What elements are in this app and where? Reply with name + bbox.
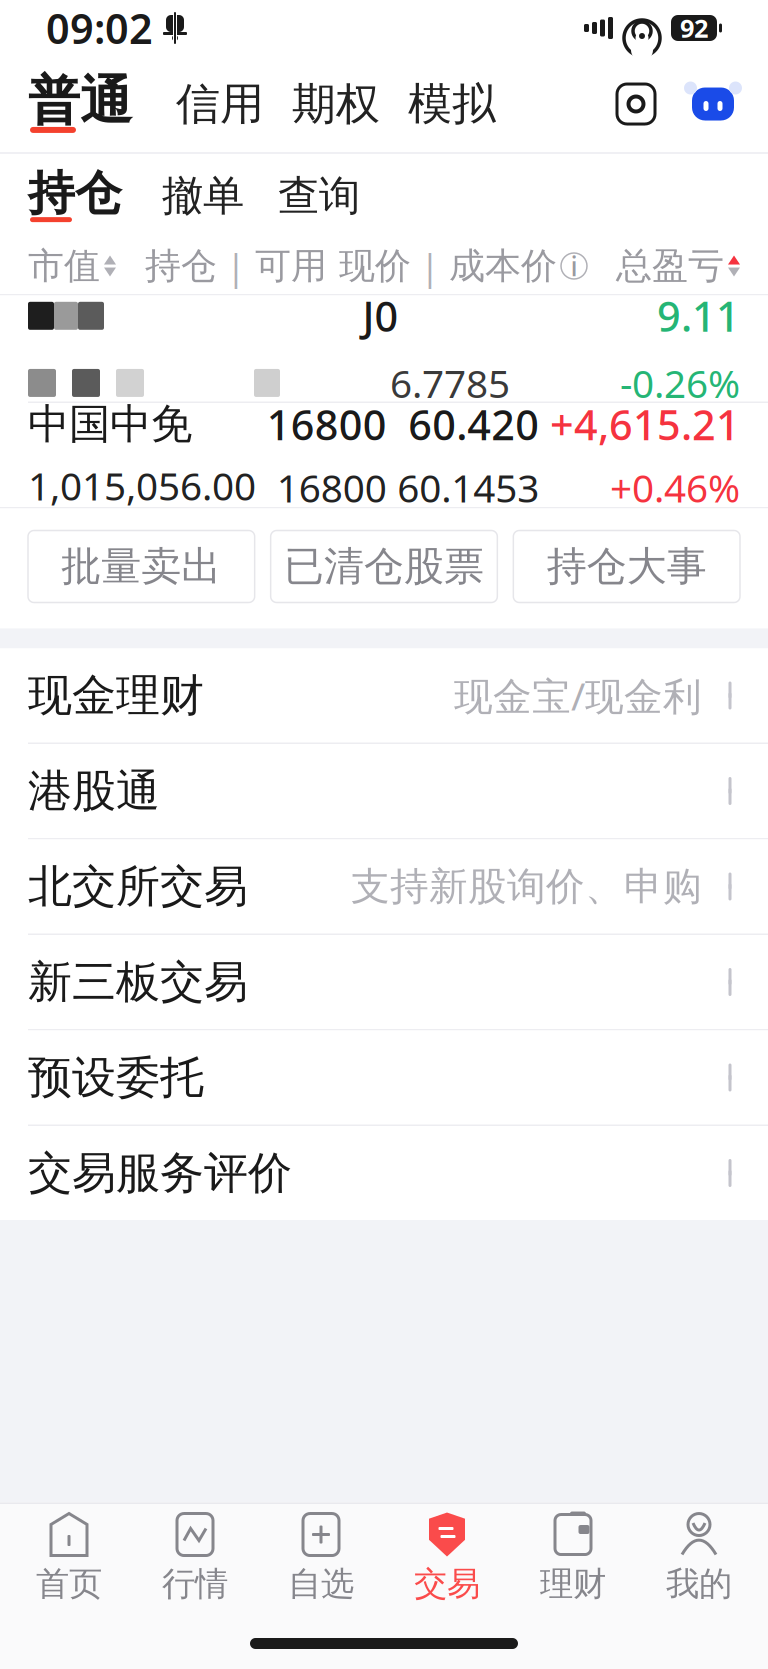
staticText: | (411, 242, 449, 290)
button[interactable]: 北交所交易 (0, 839, 768, 935)
button[interactable]: Cost price info (561, 253, 587, 279)
staticText: 现金理财 (28, 668, 204, 722)
staticText: 预设委托 (28, 1050, 204, 1104)
button[interactable]: 自选 (258, 1504, 384, 1612)
button[interactable]: 已清仓股票 (271, 530, 497, 602)
button[interactable]: 成本价 (449, 244, 557, 288)
button[interactable]: 普通 (28, 69, 132, 139)
staticText: 持仓 (145, 244, 217, 288)
staticText: 持仓 (28, 165, 122, 222)
button[interactable]: 现金理财 (0, 648, 768, 744)
staticText: 可用 (255, 244, 327, 288)
staticText: 新三板交易 (28, 955, 248, 1009)
button[interactable]: 首页 (6, 1504, 132, 1612)
button[interactable]: 持仓 (145, 244, 217, 288)
button[interactable]: 持仓大事 (513, 530, 740, 602)
staticText: 交易 (414, 1563, 480, 1604)
staticText: +0.46% (610, 462, 740, 513)
staticText: 总盈亏 (616, 244, 724, 288)
button[interactable]: 中国中免 (0, 403, 768, 507)
button[interactable]: 模拟 (394, 77, 510, 131)
staticText: J0 (362, 288, 398, 343)
button[interactable]: J0 (0, 295, 768, 401)
staticText: 已清仓股票 (284, 542, 484, 591)
staticText: 1,015,056.00 (28, 460, 256, 511)
button[interactable]: 批量卖出 (28, 530, 255, 602)
button[interactable]: 现价 (339, 244, 411, 288)
staticText: 现价 (339, 244, 411, 288)
staticText: 理财 (540, 1563, 606, 1604)
button[interactable]: 交易 (384, 1504, 510, 1612)
button[interactable]: 撤单 (150, 171, 256, 221)
button[interactable]: 我的 (636, 1504, 762, 1612)
staticText: 行情 (162, 1563, 228, 1604)
button[interactable]: 市值 (28, 244, 116, 288)
staticText: 16800 (267, 397, 387, 452)
staticText: 60.1453 (397, 462, 539, 513)
staticText: 首页 (36, 1563, 102, 1604)
staticText: 现金宝/现金利 (454, 670, 702, 721)
button[interactable]: 港股通 (0, 744, 768, 839)
staticText: 6.7785 (390, 357, 510, 409)
staticText: 北交所交易 (28, 859, 248, 913)
staticText: -0.26% (620, 357, 740, 409)
button[interactable]: AI assistant (686, 80, 740, 128)
button[interactable]: 理财 (510, 1504, 636, 1612)
staticText: 港股通 (28, 764, 160, 818)
button[interactable]: Settings (614, 82, 658, 126)
staticText: +4,615.21 (550, 397, 740, 452)
button[interactable]: 信用 (162, 77, 278, 131)
button[interactable]: 交易服务评价 (0, 1126, 768, 1220)
staticText: 批量卖出 (61, 542, 221, 591)
staticText: 92 (680, 11, 708, 45)
staticText: 信用 (176, 77, 264, 131)
staticText: 09:02 (46, 1, 153, 55)
button[interactable]: 持仓 (28, 165, 122, 227)
button[interactable]: 行情 (132, 1504, 258, 1612)
staticText: 普通 (28, 69, 132, 133)
button[interactable]: 预设委托 (0, 1030, 768, 1126)
staticText: 16800 (277, 462, 387, 513)
staticText: 支持新股询价、申购 (351, 863, 702, 910)
staticText: 交易服务评价 (28, 1146, 292, 1200)
staticText: i (570, 248, 577, 284)
staticText: 自选 (288, 1563, 354, 1604)
staticText: 期权 (292, 77, 380, 131)
staticText: 持仓大事 (547, 542, 707, 591)
staticText: 市值 (28, 244, 100, 288)
button[interactable]: 新三板交易 (0, 935, 768, 1030)
staticText: 查询 (278, 171, 360, 221)
staticText: | (217, 242, 255, 290)
button[interactable]: 可用 (255, 244, 327, 288)
staticText: 成本价 (449, 244, 557, 288)
staticText: 60.420 (408, 397, 539, 452)
staticText: 我的 (666, 1563, 732, 1604)
button[interactable]: 期权 (278, 77, 394, 131)
staticText: 中国中免 (28, 399, 192, 450)
staticText: 模拟 (408, 77, 496, 131)
staticText: 9.11 (657, 288, 740, 343)
staticText: 撤单 (162, 171, 244, 221)
button[interactable]: 总盈亏 (616, 244, 740, 288)
button[interactable]: 查询 (266, 171, 372, 221)
